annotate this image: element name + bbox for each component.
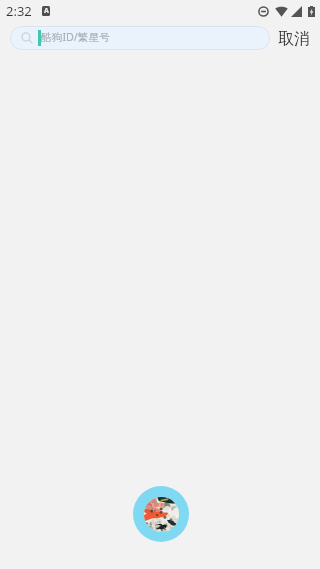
button[interactable]: 取消	[268, 23, 317, 53]
staticText: 取消	[278, 29, 310, 49]
staticText: 酷狗ID/繁星号	[41, 30, 110, 45]
staticText: A	[44, 6, 49, 16]
button[interactable]: Open profile	[133, 486, 189, 542]
button[interactable]: 酷狗ID/繁星号	[10, 26, 270, 50]
staticText: 2:32	[6, 2, 32, 20]
